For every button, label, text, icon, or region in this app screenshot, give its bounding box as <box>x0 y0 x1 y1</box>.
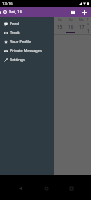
staticText: Su <box>69 18 73 22</box>
staticText: Sa <box>58 18 62 22</box>
button[interactable]: Su <box>65 17 76 34</box>
staticText: 17 <box>79 24 85 30</box>
staticText: Feed <box>10 21 19 26</box>
staticText: 11 <box>13 24 19 30</box>
staticText: Mo <box>79 18 84 22</box>
button[interactable]: Track <box>0 28 54 37</box>
button[interactable]: Tu <box>87 17 90 34</box>
button[interactable]: Recent apps <box>66 184 76 193</box>
button[interactable]: Back <box>15 184 25 193</box>
button[interactable]: Calendar <box>68 7 77 17</box>
staticText: Track <box>10 30 20 35</box>
button[interactable]: Private Messages <box>0 46 54 55</box>
button[interactable]: Tu <box>10 17 21 34</box>
button[interactable]: Mo <box>0 17 10 34</box>
staticText: Your Profile <box>10 39 32 44</box>
staticText: Private Messages <box>10 48 42 53</box>
button[interactable]: Sa <box>54 17 65 34</box>
staticText: Settings <box>10 57 25 62</box>
staticText: 16 <box>68 24 74 30</box>
button[interactable]: Settings <box>0 55 54 64</box>
button[interactable]: Your Profile <box>0 37 54 46</box>
staticText: 15 <box>57 24 63 30</box>
button[interactable]: Feed <box>0 19 54 28</box>
staticText: Tu <box>87 18 90 26</box>
button[interactable]: Home <box>41 184 51 193</box>
button[interactable]: Open navigation drawer <box>0 7 1 17</box>
staticText: 13:16 <box>2 1 13 7</box>
staticText: 10 <box>2 24 8 30</box>
button[interactable]: Mo <box>76 17 87 34</box>
staticText: Sat, 16 <box>9 9 23 15</box>
button[interactable]: Add <box>80 7 89 17</box>
staticText: 18 <box>87 28 90 34</box>
